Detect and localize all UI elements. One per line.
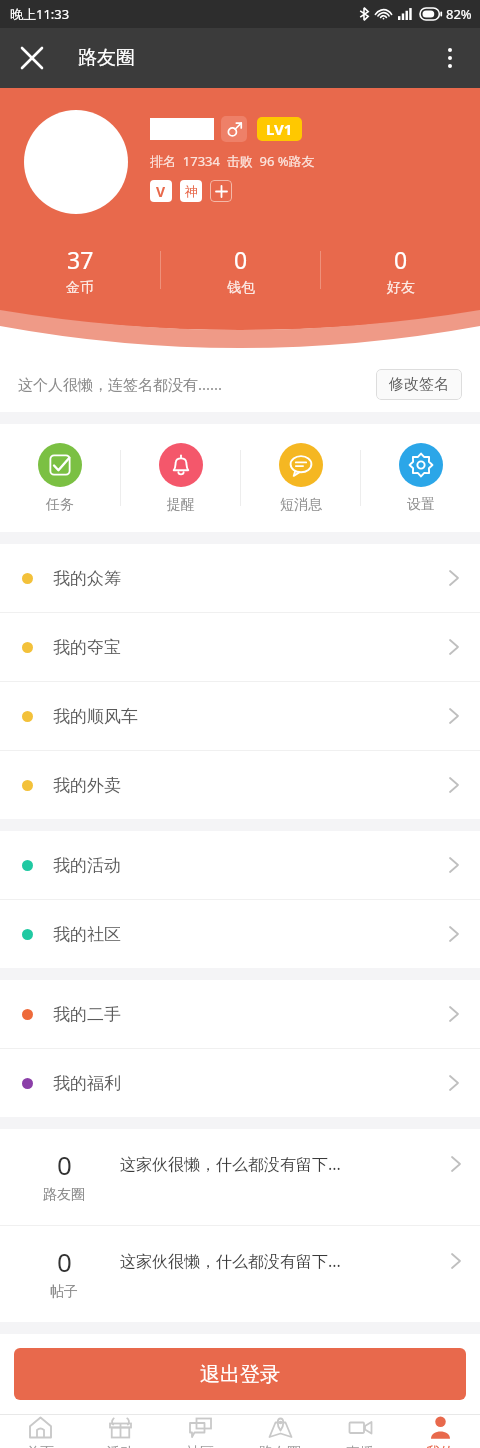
button[interactable]: 设置 (361, 424, 480, 532)
staticText: 0 (394, 244, 408, 275)
staticText: 路友圈 (78, 46, 135, 70)
button[interactable]: 任务 (0, 424, 120, 532)
button[interactable]: 路友圈 (240, 1415, 320, 1448)
staticText: 我的 (426, 1444, 454, 1448)
staticText: 社区 (186, 1444, 214, 1448)
button[interactable]: 我的 (400, 1415, 480, 1448)
staticText: 好友 (387, 279, 415, 297)
button[interactable]: God badge (180, 180, 202, 202)
staticText: 神 (185, 183, 198, 199)
button[interactable]: 我的二手 (0, 980, 480, 1048)
staticText: 这个人很懒，连签名都没有...... (18, 374, 376, 394)
button[interactable]: 短消息 (241, 424, 360, 532)
staticText: 设置 (407, 496, 435, 514)
button[interactable]: 我的外卖 (0, 751, 480, 819)
staticText: 直播 (346, 1444, 374, 1448)
staticText: 短消息 (280, 496, 322, 514)
button[interactable]: 0 (321, 238, 480, 302)
staticText: 退出登录 (200, 1362, 280, 1387)
staticText: 提醒 (167, 496, 195, 514)
button[interactable]: 活动 (80, 1415, 160, 1448)
button[interactable]: Close (8, 34, 56, 82)
button[interactable]: Verified badge (150, 180, 172, 202)
staticText: 帖子 (50, 1283, 78, 1301)
staticText: 路友圈 (43, 1186, 85, 1204)
button[interactable]: 退出登录 (14, 1348, 466, 1400)
button[interactable]: 提醒 (121, 424, 240, 532)
staticText: 我的众筹 (53, 568, 450, 589)
staticText: 路友圈 (259, 1444, 301, 1448)
button[interactable]: 37 (0, 238, 160, 302)
button[interactable]: 0 (0, 1226, 480, 1322)
staticText: 0 (57, 1244, 72, 1279)
button[interactable]: 我的社区 (0, 900, 480, 968)
staticText: 这家伙很懒，什么都没有留下... (120, 1250, 446, 1272)
staticText: 金币 (66, 279, 94, 297)
button[interactable]: More options (426, 34, 474, 82)
staticText: 0 (234, 244, 248, 275)
staticText: 82% (446, 5, 472, 23)
staticText: 任务 (46, 496, 74, 514)
staticText: 首页 (26, 1444, 54, 1448)
staticText: 钱包 (227, 279, 255, 297)
staticText: LV1 (266, 119, 293, 139)
button[interactable]: 0 (0, 1129, 480, 1225)
staticText: 37 (67, 244, 94, 275)
staticText: 修改签名 (389, 375, 449, 394)
button[interactable]: 首页 (0, 1415, 80, 1448)
staticText: 我的二手 (53, 1004, 450, 1025)
staticText: 我的外卖 (53, 775, 450, 796)
button[interactable]: Add badge (210, 180, 232, 202)
staticText: 我的夺宝 (53, 637, 450, 658)
button[interactable]: 社区 (160, 1415, 240, 1448)
button[interactable]: 我的顺风车 (0, 682, 480, 750)
button[interactable]: 0 (161, 238, 320, 302)
button[interactable]: 我的众筹 (0, 544, 480, 612)
staticText: 我的社区 (53, 924, 450, 945)
staticText: 我的活动 (53, 855, 450, 876)
staticText: 活动 (106, 1444, 134, 1448)
button[interactable]: 我的夺宝 (0, 613, 480, 681)
button[interactable]: 我的活动 (0, 831, 480, 899)
staticText: 0 (57, 1147, 72, 1182)
staticText: 这家伙很懒，什么都没有留下... (120, 1153, 446, 1175)
staticText: 我的顺风车 (53, 706, 450, 727)
button[interactable]: Avatar (24, 110, 128, 214)
button[interactable]: 直播 (320, 1415, 400, 1448)
staticText: 晚上11:33 (10, 5, 70, 23)
button[interactable]: 修改签名 (376, 369, 462, 400)
button[interactable]: 我的福利 (0, 1049, 480, 1117)
staticText: 排名 17334 击败 96 %路友 (150, 152, 315, 170)
staticText: V (156, 182, 166, 201)
staticText: 我的福利 (53, 1073, 450, 1094)
